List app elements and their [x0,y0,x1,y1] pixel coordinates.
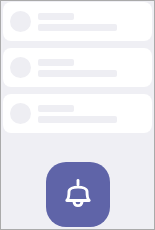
button[interactable] [3,94,152,133]
button[interactable]: Notifications [46,162,110,227]
button[interactable] [3,2,152,41]
button[interactable] [3,48,152,87]
